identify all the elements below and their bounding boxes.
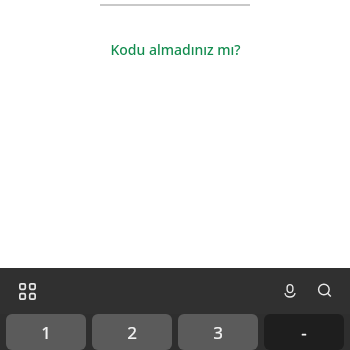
staticText: - — [301, 321, 307, 344]
staticText: Kodu almadınız mı? — [110, 40, 241, 59]
button[interactable]: - — [264, 314, 344, 350]
staticText: 2 — [127, 321, 137, 344]
staticText: 1 — [41, 321, 51, 344]
button[interactable]: Voice input — [274, 275, 306, 307]
button[interactable]: Kodu almadınız mı? — [102, 38, 249, 61]
button[interactable]: 2 — [92, 314, 172, 350]
button[interactable]: 3 — [178, 314, 258, 350]
button[interactable]: Search — [309, 275, 341, 307]
staticText: 3 — [213, 321, 223, 344]
button[interactable]: 1 — [6, 314, 86, 350]
button[interactable]: Keyboard apps — [10, 274, 44, 308]
